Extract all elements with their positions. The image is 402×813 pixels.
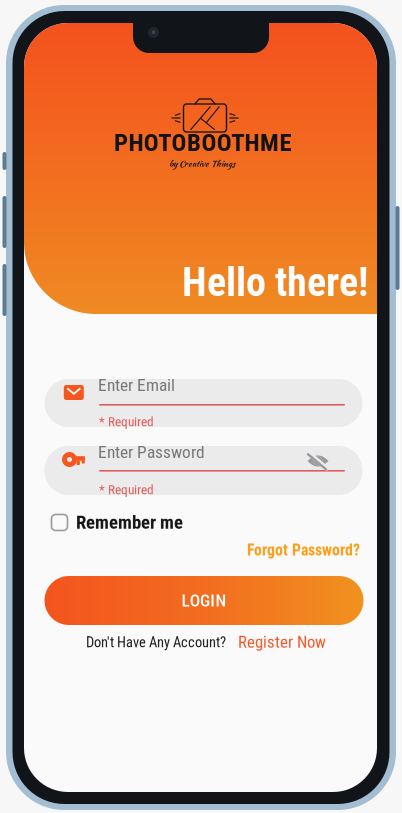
- staticText: Enter Email: [98, 375, 175, 395]
- staticText: Remember me: [76, 511, 183, 533]
- button[interactable]: LOGIN: [44, 576, 363, 625]
- staticText: LOGIN: [181, 590, 227, 611]
- button[interactable]: Remember me: [51, 511, 191, 533]
- staticText: Don't Have Any Account?: [86, 634, 226, 651]
- staticText: * Required: [99, 414, 154, 430]
- staticText: Enter Password: [98, 442, 205, 462]
- button[interactable]: Forgot Password?: [247, 541, 363, 559]
- staticText: Forgot Password?: [247, 541, 360, 559]
- staticText: Hello there!: [182, 259, 368, 306]
- staticText: by Creative Things: [169, 157, 235, 170]
- staticText: * Required: [99, 482, 154, 498]
- button[interactable]: Show password: [305, 451, 331, 471]
- staticText: PHOTOBOOTHME: [114, 128, 291, 157]
- staticText: Register Now: [238, 632, 326, 652]
- button[interactable]: Register Now: [238, 633, 326, 651]
